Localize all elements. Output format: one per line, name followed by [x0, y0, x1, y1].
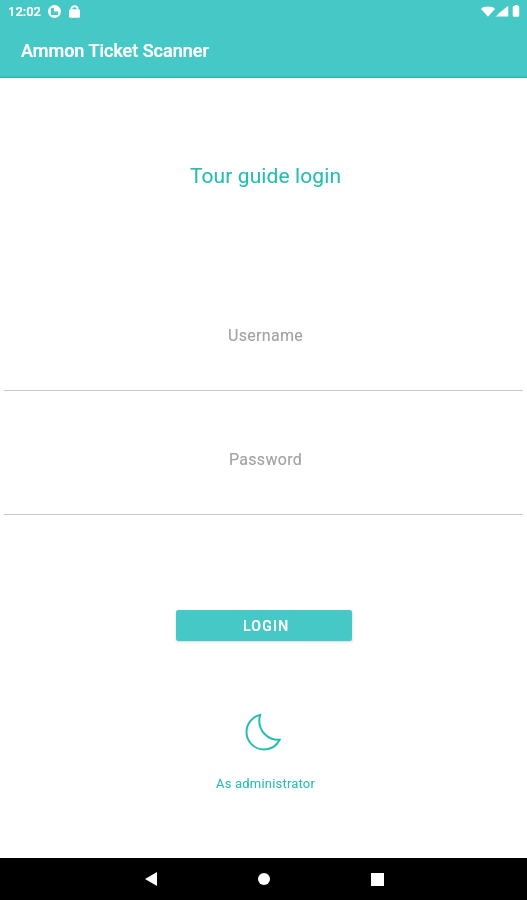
button[interactable]: LOGIN: [176, 610, 352, 641]
button[interactable]: Sign in as administrator: [214, 712, 314, 791]
staticText: As administrator: [216, 776, 316, 791]
staticText: 12:02: [8, 4, 41, 19]
staticText: Username: [2, 326, 527, 345]
button[interactable]: Recents: [353, 858, 401, 900]
staticText: Tour guide login: [2, 164, 527, 189]
staticText: Password: [2, 450, 527, 469]
staticText: Ammon Ticket Scanner: [21, 40, 209, 61]
staticText: LOGIN: [243, 618, 290, 634]
button[interactable]: Back: [127, 858, 175, 900]
button[interactable]: Home: [240, 858, 288, 900]
